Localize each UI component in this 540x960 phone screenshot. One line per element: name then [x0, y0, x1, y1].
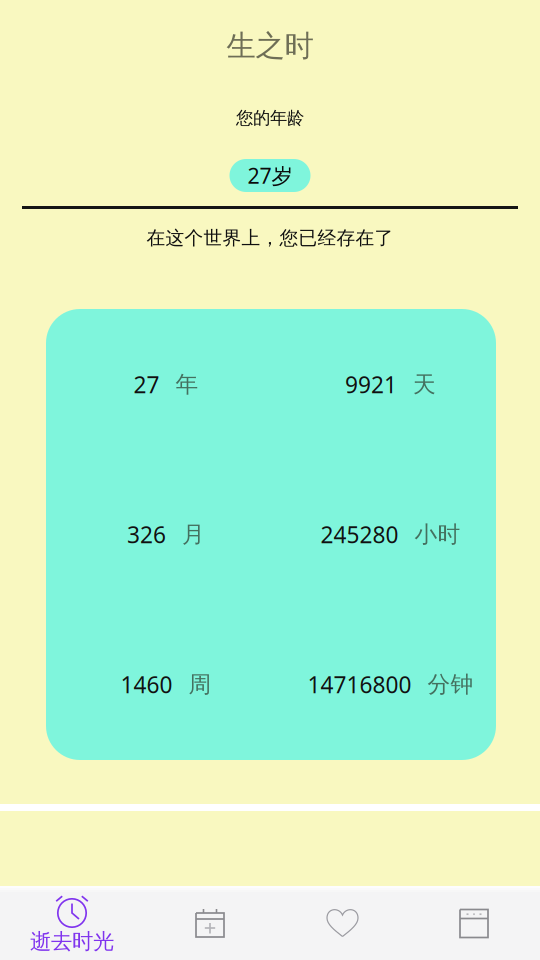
button[interactable]: 逝去时光	[4, 887, 139, 960]
staticText: 您的年龄	[236, 107, 304, 129]
button[interactable]: Add event	[142, 885, 277, 959]
staticText: 年	[175, 371, 198, 398]
button[interactable]: Favorites	[275, 885, 410, 959]
staticText: 天	[413, 371, 436, 398]
staticText: 周	[188, 671, 211, 698]
staticText: 小时	[414, 521, 460, 548]
staticText: 27	[133, 369, 159, 399]
staticText: 27岁	[247, 161, 292, 190]
staticText: 在这个世界上，您已经存在了	[146, 226, 393, 249]
staticText: 分钟	[427, 671, 473, 698]
staticText: 14716800	[307, 669, 411, 699]
staticText: 9921	[345, 369, 397, 399]
button[interactable]: More	[406, 885, 540, 959]
staticText: 逝去时光	[30, 928, 114, 955]
staticText: 月	[182, 521, 205, 548]
staticText: 326	[127, 519, 166, 549]
staticText: 245280	[320, 519, 398, 549]
staticText: 生之时	[226, 28, 313, 64]
staticText: 1460	[120, 669, 172, 699]
